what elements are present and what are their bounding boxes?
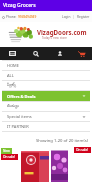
button[interactable]: Account [48,47,72,60]
staticText: New [3,149,10,153]
staticText: HOME [7,63,19,68]
staticText: On sale! [76,148,89,152]
staticText: Special items [7,114,32,119]
staticText: Offers & Deals [7,94,36,99]
button[interactable]: Cart [72,47,92,60]
staticText: Register [77,15,90,19]
button[interactable]: HOME [2,61,90,70]
staticText: ALL [7,73,14,78]
button[interactable]: Special items [2,112,90,121]
staticText: 9949494949 [18,15,37,19]
staticText: VizagDoors.com [37,28,87,36]
button[interactable]: స్వీట్స్ [2,81,90,90]
button[interactable]: New [0,146,68,182]
button[interactable]: ALL [2,71,90,80]
staticText: Showing 1-20 of 20 item(s) [36,138,88,144]
button[interactable]: Offers & Deals [2,91,90,101]
staticText: బియ్యం [7,104,19,109]
staticText: Today's new store [42,36,67,40]
staticText: Vizag Grocers [3,2,36,9]
button[interactable]: IT PARTNER [2,122,90,131]
staticText: స్వీట్స్ [7,83,17,88]
button[interactable]: బియ్యం [2,102,90,111]
staticText: IT PARTNER [7,124,29,129]
staticText: Login [62,15,71,19]
button[interactable]: Menu [0,47,24,60]
button[interactable]: On sale! [70,146,92,182]
button[interactable]: Search [24,47,48,60]
staticText: Phone: [6,15,18,19]
staticText: On sale! [3,155,16,159]
staticText: | [71,15,77,19]
